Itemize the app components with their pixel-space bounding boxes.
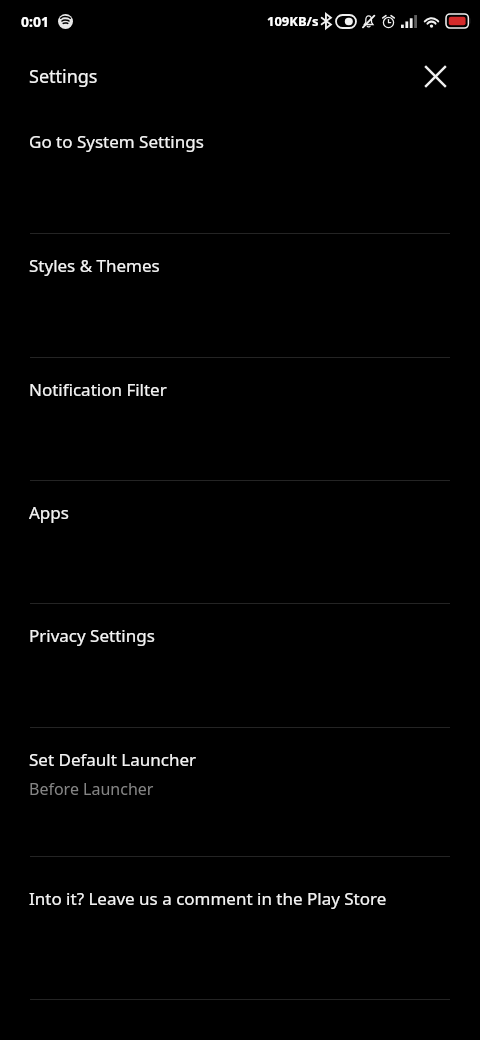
button[interactable]: Notification Filter [0,358,480,481]
button[interactable]: Apps [0,481,480,604]
staticText: Settings [29,64,98,89]
staticText: 0:01 [21,12,49,31]
button[interactable]: Privacy Settings [0,604,480,728]
staticText: Before Launcher [29,778,154,800]
staticText: Notification Filter [29,378,167,401]
button[interactable]: Into it? Leave us a comment in the Play … [0,857,480,1000]
staticText: Privacy Settings [29,624,155,647]
staticText: Set Default Launcher [29,748,197,771]
button[interactable]: Close settings [417,58,453,94]
staticText: Styles & Themes [29,254,160,277]
staticText: Apps [29,501,69,524]
button[interactable]: Set Default Launcher [0,728,480,857]
staticText: Go to System Settings [29,130,204,153]
button[interactable]: Styles & Themes [0,234,480,358]
staticText: Into it? Leave us a comment in the Play … [29,887,387,910]
button[interactable]: Go to System Settings [0,110,480,234]
staticText: 109KB/s [267,12,319,30]
